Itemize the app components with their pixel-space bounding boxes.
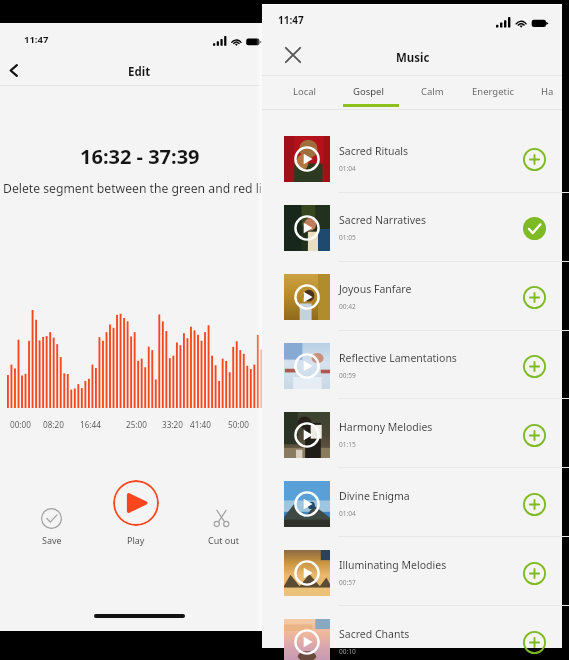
staticText: Illuminating Melodies <box>339 558 447 572</box>
button[interactable]: Reflective Lamentations <box>262 325 562 394</box>
button[interactable] <box>201 498 241 538</box>
button[interactable]: Ha <box>527 75 567 107</box>
staticText: 00:42 <box>339 302 356 311</box>
button[interactable]: Divine Enigma <box>262 463 562 532</box>
button[interactable]: Sacred Chants <box>262 601 562 660</box>
staticText: 41:40 <box>190 419 211 430</box>
button[interactable]: Illuminating Melodies <box>262 532 562 601</box>
button[interactable]: Local <box>279 75 330 107</box>
button[interactable]: Add <box>517 142 551 176</box>
button[interactable]: Energetic <box>458 75 526 107</box>
button[interactable]: Calm <box>407 75 456 107</box>
staticText: 08:20 <box>43 419 64 430</box>
staticText: Sacred Rituals <box>339 144 409 158</box>
staticText: Music <box>396 50 430 66</box>
staticText: 16:32 - 37:39 <box>80 143 200 170</box>
staticText: 00:59 <box>339 371 356 380</box>
button[interactable]: Add <box>517 625 551 659</box>
staticText: Harmony Melodies <box>339 420 433 434</box>
staticText: 00:57 <box>339 578 356 587</box>
staticText: Gospel <box>353 85 384 98</box>
staticText: Delete segment between the green and red… <box>3 180 282 197</box>
staticText: 50:00 <box>228 419 249 430</box>
button[interactable]: Add <box>517 280 551 314</box>
staticText: 25:00 <box>126 419 147 430</box>
staticText: 00:00 <box>10 419 31 430</box>
button[interactable]: Gospel <box>339 75 395 107</box>
staticText: Divine Enigma <box>339 489 410 503</box>
button[interactable]: Add <box>517 556 551 590</box>
staticText: Calm <box>421 85 444 98</box>
button[interactable]: Add <box>517 418 551 452</box>
button[interactable]: Back <box>0 52 31 88</box>
staticText: 00:10 <box>339 647 356 656</box>
button[interactable] <box>31 498 71 538</box>
button[interactable]: Harmony Melodies <box>262 394 562 463</box>
staticText: Energetic <box>472 85 514 98</box>
staticText: 01:15 <box>339 440 356 449</box>
staticText: 01:04 <box>339 164 356 173</box>
staticText: 01:04 <box>339 509 356 518</box>
staticText: Sacred Narratives <box>339 213 426 227</box>
button[interactable]: Close <box>275 37 311 73</box>
staticText: 01:05 <box>339 233 356 242</box>
button[interactable]: Add <box>517 487 551 521</box>
staticText: Joyous Fanfare <box>339 282 412 296</box>
staticText: Ha <box>541 85 554 98</box>
button[interactable]: Added <box>517 211 551 245</box>
staticText: 16:44 <box>80 419 101 430</box>
button[interactable]: Joyous Fanfare <box>262 256 562 325</box>
button[interactable]: Sacred Rituals <box>262 118 562 187</box>
staticText: Edit <box>128 64 151 80</box>
staticText: Play <box>127 534 145 546</box>
staticText: Reflective Lamentations <box>339 351 457 365</box>
staticText: Cut out <box>208 534 240 546</box>
button[interactable]: Add <box>517 349 551 383</box>
staticText: 33:20 <box>162 419 183 430</box>
button[interactable]: Sacred Narratives <box>262 187 562 256</box>
staticText: Local <box>293 85 317 98</box>
staticText: Save <box>42 534 62 546</box>
staticText: 11:47 <box>24 33 49 46</box>
staticText: Sacred Chants <box>339 627 410 641</box>
button[interactable] <box>113 480 159 526</box>
staticText: 11:47 <box>278 13 304 27</box>
